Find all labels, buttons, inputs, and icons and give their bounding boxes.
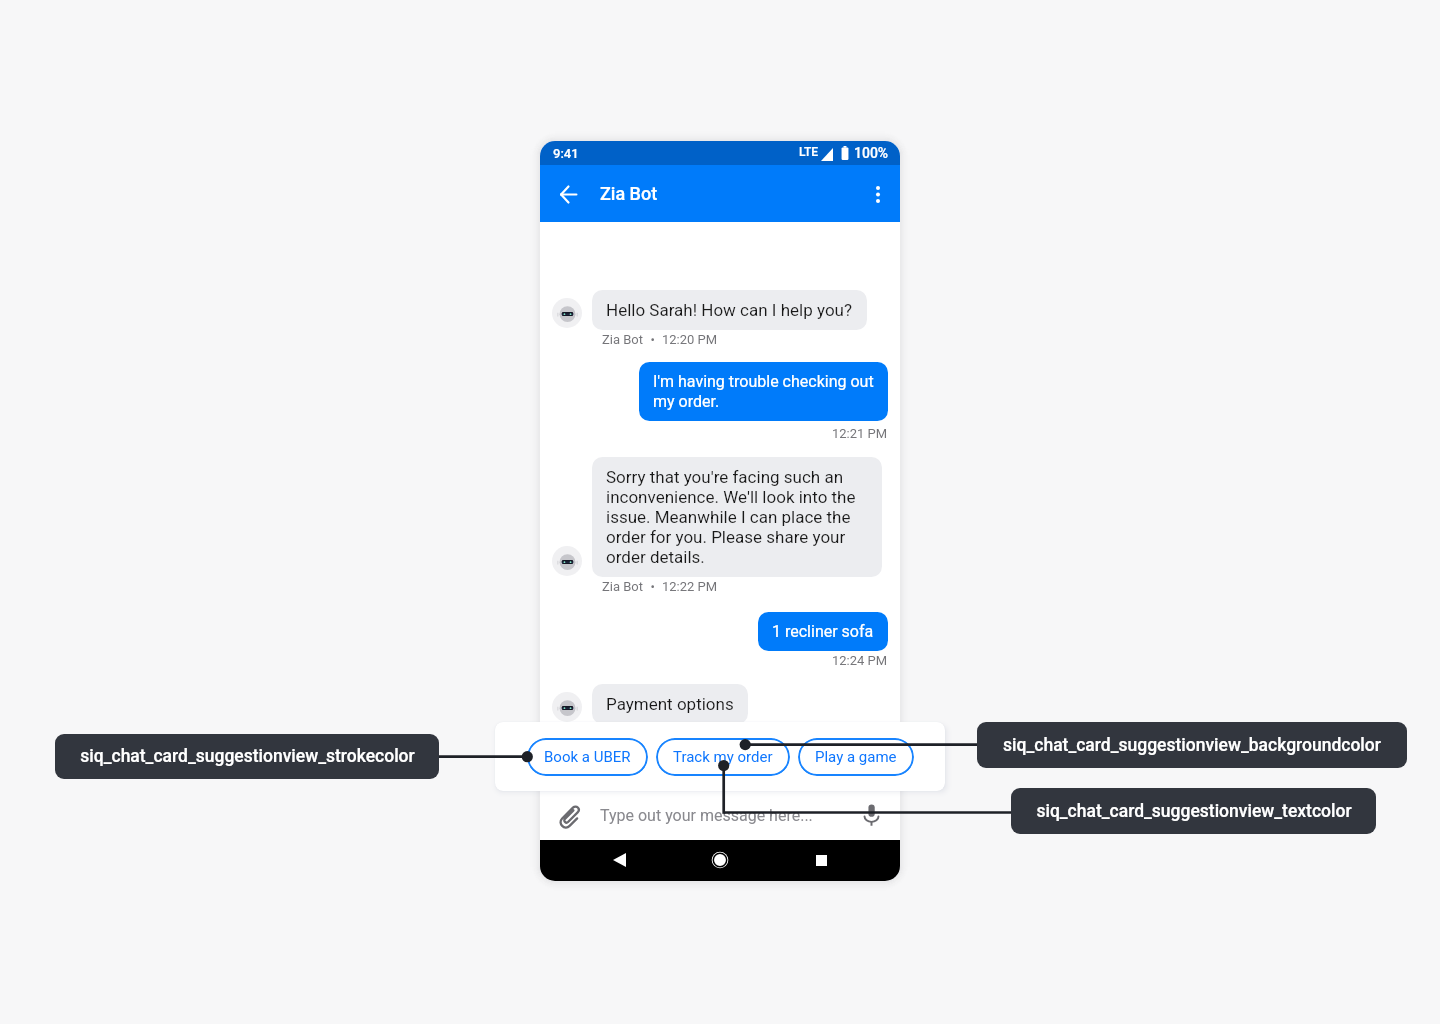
staticText: 9:41 [553, 146, 579, 161]
button[interactable]: 1 recliner sofa [758, 612, 888, 651]
staticText: siq_chat_card_suggestionview_textcolor [1036, 801, 1352, 822]
button[interactable]: Voice input [851, 794, 891, 834]
button[interactable]: Recent apps [799, 840, 843, 880]
staticText: Zia Bot [602, 579, 644, 594]
button[interactable]: Book a UBER [527, 738, 648, 776]
staticText: • [644, 579, 662, 594]
staticText: Zia Bot [600, 183, 658, 204]
staticText: Sorry that you're facing such an inconve… [606, 467, 856, 567]
button[interactable]: Hello Sarah! How can I help you? [592, 290, 867, 330]
staticText: 12:21 PM [832, 426, 888, 441]
staticText: LTE [799, 145, 819, 159]
staticText: • [644, 332, 662, 347]
staticText: Play a game [815, 748, 897, 766]
button[interactable]: Payment options [592, 684, 748, 724]
button[interactable]: Play a game [798, 738, 914, 776]
staticText: 12:22 PM [662, 579, 718, 594]
staticText: I'm having trouble checking out my order… [653, 372, 874, 411]
button[interactable]: Track my order [656, 738, 790, 776]
button[interactable]: Attach file [549, 795, 589, 835]
button[interactable]: Home [698, 840, 742, 880]
staticText: 1 recliner sofa [772, 622, 874, 641]
staticText: siq_chat_card_suggestionview_strokecolor [80, 746, 415, 767]
staticText: 100% [854, 145, 889, 161]
staticText: Hello Sarah! How can I help you? [606, 300, 853, 320]
button[interactable]: Back [546, 172, 590, 216]
button[interactable]: Sorry that you're facing such an inconve… [592, 457, 882, 577]
staticText: 12:20 PM [662, 332, 718, 347]
staticText: Type out your message here... [600, 806, 813, 825]
staticText: 12:24 PM [832, 653, 888, 668]
button[interactable]: I'm having trouble checking out my order… [639, 362, 888, 421]
staticText: Book a UBER [544, 748, 631, 766]
staticText: Track my order [673, 748, 773, 766]
staticText: Zia Bot [602, 332, 644, 347]
button[interactable]: More options [856, 172, 900, 216]
staticText: Payment options [606, 694, 734, 714]
button[interactable]: Back [597, 840, 641, 880]
staticText: siq_chat_card_suggestionview_backgroundc… [1003, 735, 1381, 756]
